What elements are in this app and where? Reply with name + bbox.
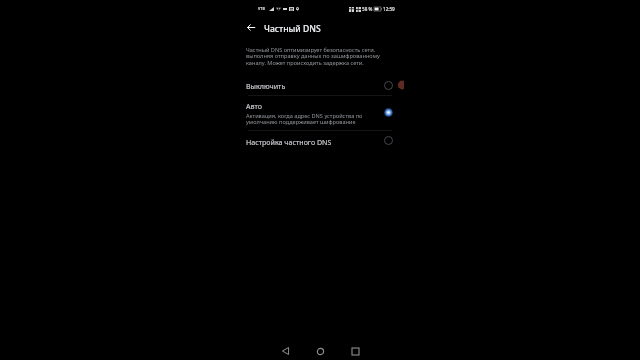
staticText: Частный DNS оптимизирует безопасность се… [246, 46, 384, 67]
button[interactable]: Настройка частного DNS [236, 132, 404, 150]
button[interactable]: Not selected [383, 80, 394, 91]
staticText: Частный DNS [264, 23, 321, 35]
button[interactable]: Not selected [383, 135, 394, 146]
button[interactable]: Recent apps [347, 343, 363, 359]
button[interactable]: Авто [236, 96, 404, 127]
button[interactable]: Home [312, 343, 328, 359]
button[interactable]: Back [242, 18, 260, 36]
staticText: 12:59 [383, 6, 395, 12]
button[interactable]: Выключить [236, 76, 404, 94]
staticText: Настройка частного DNS [246, 137, 332, 147]
button[interactable]: Selected [383, 107, 394, 118]
staticText: 58 % [362, 6, 373, 12]
staticText: Активация, когда адрес DNS устройства по… [246, 112, 376, 126]
staticText: Выключить [246, 81, 286, 91]
staticText: VTB [258, 6, 265, 11]
button[interactable]: Back [277, 343, 293, 359]
staticText: Авто [246, 101, 262, 111]
